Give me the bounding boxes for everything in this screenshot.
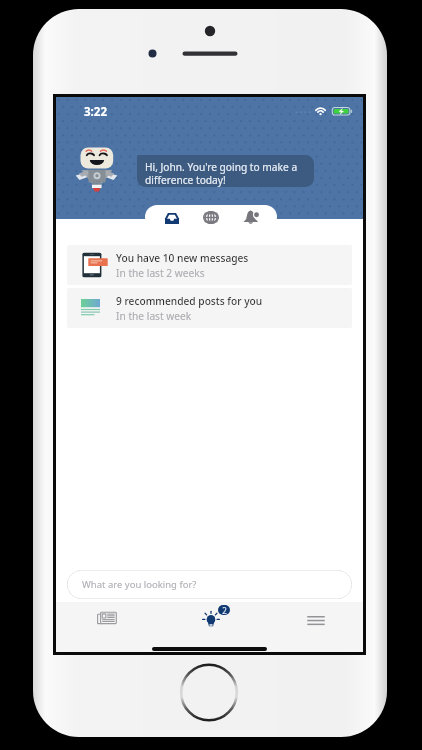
button[interactable]: Explore xyxy=(191,205,231,229)
staticText: You have 10 new messages xyxy=(116,251,249,265)
button[interactable]: Ideas xyxy=(188,605,234,635)
button[interactable]: Notifications xyxy=(231,205,271,229)
staticText: 3:22 xyxy=(84,104,107,120)
staticText: Hi, John. You're going to make a differe… xyxy=(145,160,298,187)
staticText: In the last 2 weeks xyxy=(116,266,205,280)
staticText: In the last week xyxy=(116,309,192,323)
staticText: 9 recommended posts for you xyxy=(116,294,263,308)
button[interactable]: 9 recommended posts for you xyxy=(67,288,352,328)
button[interactable]: Menu xyxy=(293,605,339,635)
button[interactable]: Inbox xyxy=(152,205,192,229)
button[interactable]: News xyxy=(84,605,130,635)
button[interactable]: You have 10 new messages xyxy=(67,245,352,285)
staticText: 2 xyxy=(222,605,227,615)
staticText: What are you looking for? xyxy=(82,578,197,591)
button[interactable]: What are you looking for? xyxy=(67,570,352,599)
